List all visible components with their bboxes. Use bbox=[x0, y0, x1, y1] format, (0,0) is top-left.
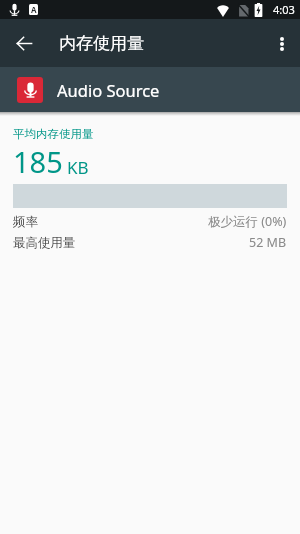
staticText: KB bbox=[67, 156, 89, 179]
staticText: A bbox=[31, 4, 37, 15]
staticText: 频率 bbox=[13, 214, 38, 230]
button[interactable]: 最高使用量 bbox=[0, 232, 300, 253]
staticText: 内存使用量 bbox=[59, 33, 144, 54]
staticText: 平均内存使用量 bbox=[13, 127, 94, 141]
staticText: 52 MB bbox=[249, 234, 287, 251]
staticText: Audio Source bbox=[57, 79, 160, 101]
button[interactable]: Back bbox=[0, 19, 48, 67]
staticText: 极少运行 (0%) bbox=[208, 213, 287, 230]
staticText: 4:03 bbox=[273, 2, 295, 17]
button[interactable]: Audio Source bbox=[0, 67, 300, 112]
button[interactable]: 频率 bbox=[0, 211, 300, 232]
button[interactable]: More options bbox=[264, 19, 300, 67]
staticText: 185 bbox=[13, 142, 63, 181]
staticText: 最高使用量 bbox=[13, 235, 76, 251]
